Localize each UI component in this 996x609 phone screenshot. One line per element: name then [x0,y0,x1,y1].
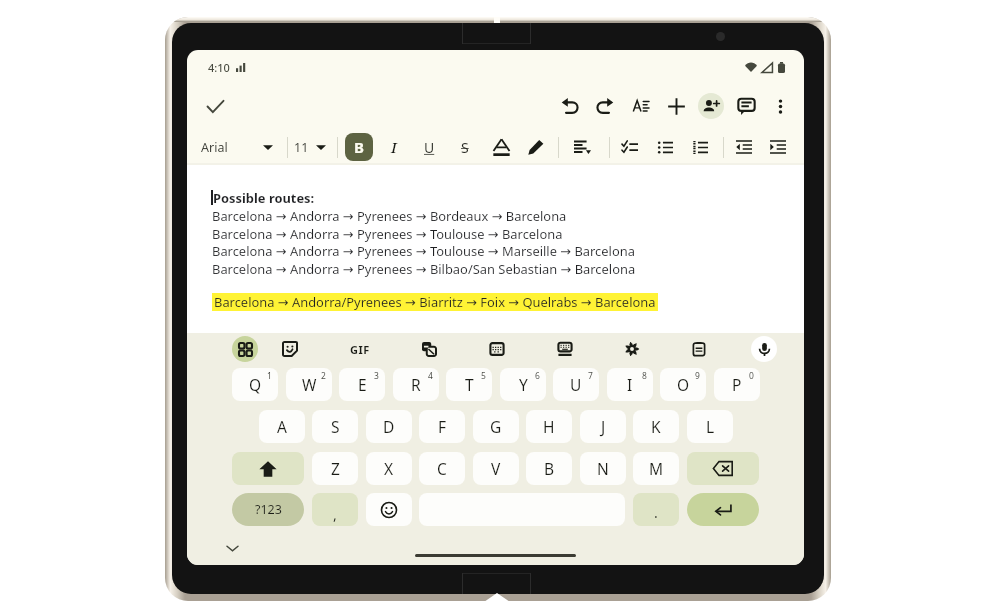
staticText: A [277,416,287,437]
button[interactable]: F [419,410,465,443]
button[interactable]: T [446,368,492,401]
staticText: U [570,374,582,395]
button[interactable]: L [687,410,733,443]
button[interactable]: Apps [232,336,258,362]
button[interactable]: X [366,452,412,485]
button[interactable]: Numbered list [687,134,713,160]
staticText: C [437,458,447,479]
staticText: U [424,138,435,157]
staticText: X [384,458,394,479]
button[interactable]: Z [312,452,358,485]
button[interactable]: Stickers [276,335,304,363]
button[interactable]: G [473,410,519,443]
button[interactable]: B [526,452,572,485]
button[interactable]: Text colour [488,134,514,160]
button[interactable]: Y [500,368,546,401]
button[interactable]: Shift [232,452,304,485]
button[interactable]: Text editing [483,335,511,363]
staticText: Arial [201,139,228,156]
staticText: 6 [535,370,540,382]
button[interactable]: S [452,134,478,160]
staticText: . [654,503,658,522]
button[interactable]: B [345,133,373,161]
staticText: G [490,416,502,437]
button[interactable]: S [312,410,358,443]
staticText: S [461,138,469,157]
button[interactable]: Text formatting [627,92,655,120]
staticText: 0 [749,370,754,382]
staticText: Possible routes: [213,189,315,207]
button[interactable]: Voice input [751,336,777,362]
button[interactable]: Undo [556,92,584,120]
button[interactable]: Settings [618,335,646,363]
button[interactable]: E [339,368,385,401]
button[interactable]: Increase indent [765,134,791,160]
button[interactable]: Translate [415,335,443,363]
staticText: 5 [481,370,486,382]
button[interactable]: Checklist [617,134,643,160]
button[interactable]: V [473,452,519,485]
button[interactable]: Redo [591,92,619,120]
button[interactable]: Comma [312,493,358,526]
staticText: 7 [588,370,593,382]
button[interactable]: Hide keyboard [222,538,242,558]
button[interactable]: Symbols [232,493,304,526]
button[interactable]: Insert [662,92,690,120]
button[interactable]: U [553,368,599,401]
button[interactable]: Alignment [568,133,596,161]
button[interactable]: Floating keyboard [551,335,579,363]
staticText: 3 [374,370,379,382]
staticText: Z [331,458,340,479]
staticText: I [627,374,633,395]
button[interactable]: M [633,452,679,485]
button[interactable]: D [366,410,412,443]
button[interactable]: Clipboard [685,335,713,363]
button[interactable]: Emoji [366,493,412,526]
button[interactable]: W [286,368,332,401]
staticText: V [491,458,501,479]
button[interactable]: Q [232,368,278,401]
button[interactable]: I [381,134,407,160]
button[interactable]: K [633,410,679,443]
staticText: 8 [642,370,647,382]
button[interactable]: N [580,452,626,485]
button[interactable]: H [526,410,572,443]
staticText: , [333,505,337,524]
button[interactable]: U [416,134,442,160]
button[interactable]: O [660,368,706,401]
button[interactable]: A [259,410,305,443]
staticText: Barcelona → Andorra → Pyrenees → Toulous… [212,225,563,243]
staticText: R [411,374,421,395]
staticText: H [543,416,555,437]
staticText: Barcelona → Andorra/Pyrenees → Biarritz … [214,293,656,311]
button[interactable]: Highlight colour [523,134,549,160]
button[interactable]: Comments [732,92,760,120]
staticText: M [649,458,664,479]
button[interactable]: Enter [687,493,759,526]
button[interactable]: 11 [294,135,326,159]
staticText: W [302,374,317,395]
staticText: F [438,416,447,437]
staticText: B [354,137,364,157]
button[interactable]: GIF [344,338,376,360]
button[interactable]: P [714,368,760,401]
button[interactable]: C [419,452,465,485]
button[interactable]: R [393,368,439,401]
staticText: D [383,416,395,437]
staticText: B [544,458,555,479]
button[interactable]: I [607,368,653,401]
button[interactable]: Backspace [687,452,759,485]
button[interactable]: J [580,410,626,443]
button[interactable]: Done [201,92,229,120]
staticText: Y [519,374,528,395]
button[interactable]: Arial [201,135,273,159]
button[interactable]: More options [766,92,794,120]
staticText: Barcelona → Andorra → Pyrenees → Bilbao/… [212,260,636,278]
staticText: S [331,416,340,437]
button[interactable]: Decrease indent [731,134,757,160]
button[interactable]: Bulleted list [652,134,678,160]
button[interactable]: Share [698,93,724,119]
staticText: 11 [294,139,309,156]
button[interactable]: Period [633,493,679,526]
